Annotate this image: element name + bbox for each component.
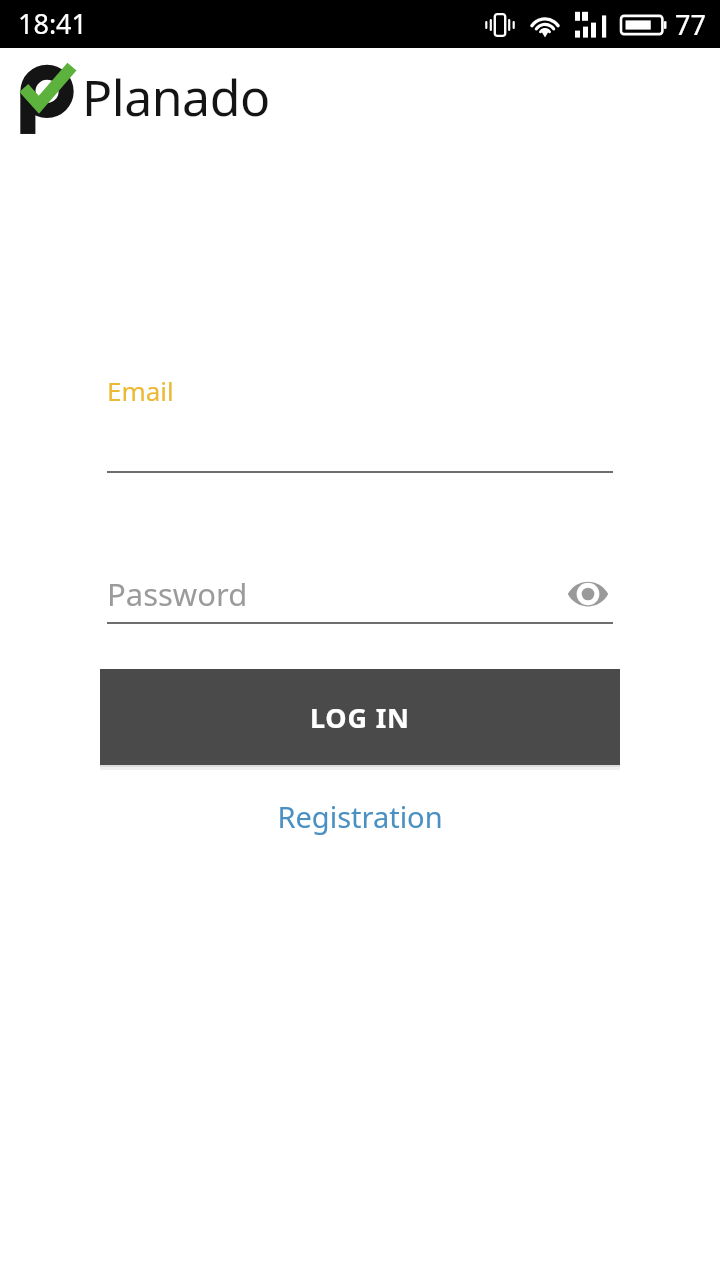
staticText: 18:41 (18, 5, 88, 42)
button[interactable]: LOG IN (100, 669, 620, 765)
button[interactable] (107, 408, 613, 472)
button[interactable]: Show password (558, 565, 618, 623)
staticText: Password (107, 573, 248, 615)
staticText: 77 (675, 6, 706, 43)
staticText: Email (107, 373, 174, 408)
staticText: Planado (82, 63, 270, 131)
button[interactable]: Password (107, 565, 613, 623)
button[interactable]: Registration (100, 788, 620, 844)
staticText: Registration (277, 797, 443, 836)
staticText: LOG IN (310, 699, 410, 736)
